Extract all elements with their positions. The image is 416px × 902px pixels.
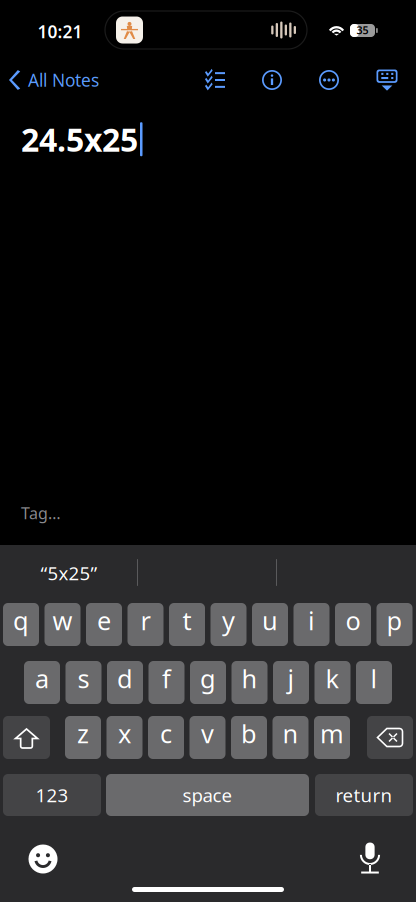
staticText: v [201,717,214,750]
staticText: f [162,662,171,695]
button[interactable]: Shift [3,716,50,759]
staticText: 24.5x25 [21,118,138,160]
staticText: l [370,662,377,695]
staticText: a [35,662,49,695]
staticText: i [308,604,315,637]
button[interactable]: return [315,774,413,816]
staticText: return [335,783,392,807]
button[interactable]: i [293,603,329,646]
button[interactable]: k [314,661,350,704]
button[interactable]: s [65,661,101,704]
button[interactable]: d [107,661,143,704]
staticText: Tag… [21,502,61,524]
button[interactable]: All Notes [0,58,107,102]
button[interactable]: c [148,716,184,759]
button[interactable]: Emoji [21,837,65,881]
staticText: k [325,662,339,695]
staticText: 10:21 [37,20,82,43]
button[interactable]: b [231,716,267,759]
staticText: j [287,662,294,695]
staticText: q [13,604,29,637]
staticText: z [77,717,89,750]
staticText: d [117,662,133,695]
staticText: c [160,717,172,750]
staticText: b [241,717,257,750]
button[interactable]: w [44,603,80,646]
staticText: m [320,717,344,750]
button[interactable]: x [106,716,142,759]
staticText: w [52,604,72,637]
button[interactable]: o [335,603,371,646]
staticText: r [140,604,150,637]
button[interactable]: space [106,774,309,816]
button[interactable]: e [86,603,122,646]
button[interactable]: Hide Keyboard [365,58,409,102]
button[interactable]: t [169,603,205,646]
button[interactable]: l [356,661,392,704]
button[interactable]: m [314,716,350,759]
button[interactable]: Note Info [250,58,294,102]
button[interactable]: n [272,716,308,759]
staticText: p [386,604,402,637]
button[interactable]: f [148,661,184,704]
staticText: y [222,604,235,637]
staticText: e [97,604,111,637]
staticText: “5x25” [40,561,97,585]
staticText: 35 [356,23,368,37]
button[interactable]: 123 [3,774,101,816]
button[interactable]: Dictation [348,836,392,880]
staticText: t [182,604,191,637]
button[interactable]: Checklist [193,58,237,102]
button[interactable]: r [127,603,163,646]
staticText: 123 [35,783,68,807]
staticText: o [345,604,360,637]
staticText: space [182,783,232,807]
button[interactable]: z [65,716,101,759]
staticText: u [262,604,278,637]
staticText: n [282,717,298,750]
staticText: x [118,717,131,750]
staticText: s [77,662,89,695]
button[interactable]: Delete [367,716,413,759]
button[interactable]: u [252,603,288,646]
button[interactable]: g [190,661,226,704]
button[interactable]: y [210,603,246,646]
button[interactable]: q [3,603,39,646]
button[interactable]: p [376,603,412,646]
button[interactable]: j [273,661,309,704]
button[interactable]: More [307,58,351,102]
staticText: g [200,662,216,695]
button[interactable]: Tag… [21,498,61,528]
button[interactable]: h [231,661,267,704]
button[interactable]: v [189,716,225,759]
staticText: All Notes [28,68,99,91]
staticText: h [241,662,257,695]
button[interactable]: a [24,661,60,704]
